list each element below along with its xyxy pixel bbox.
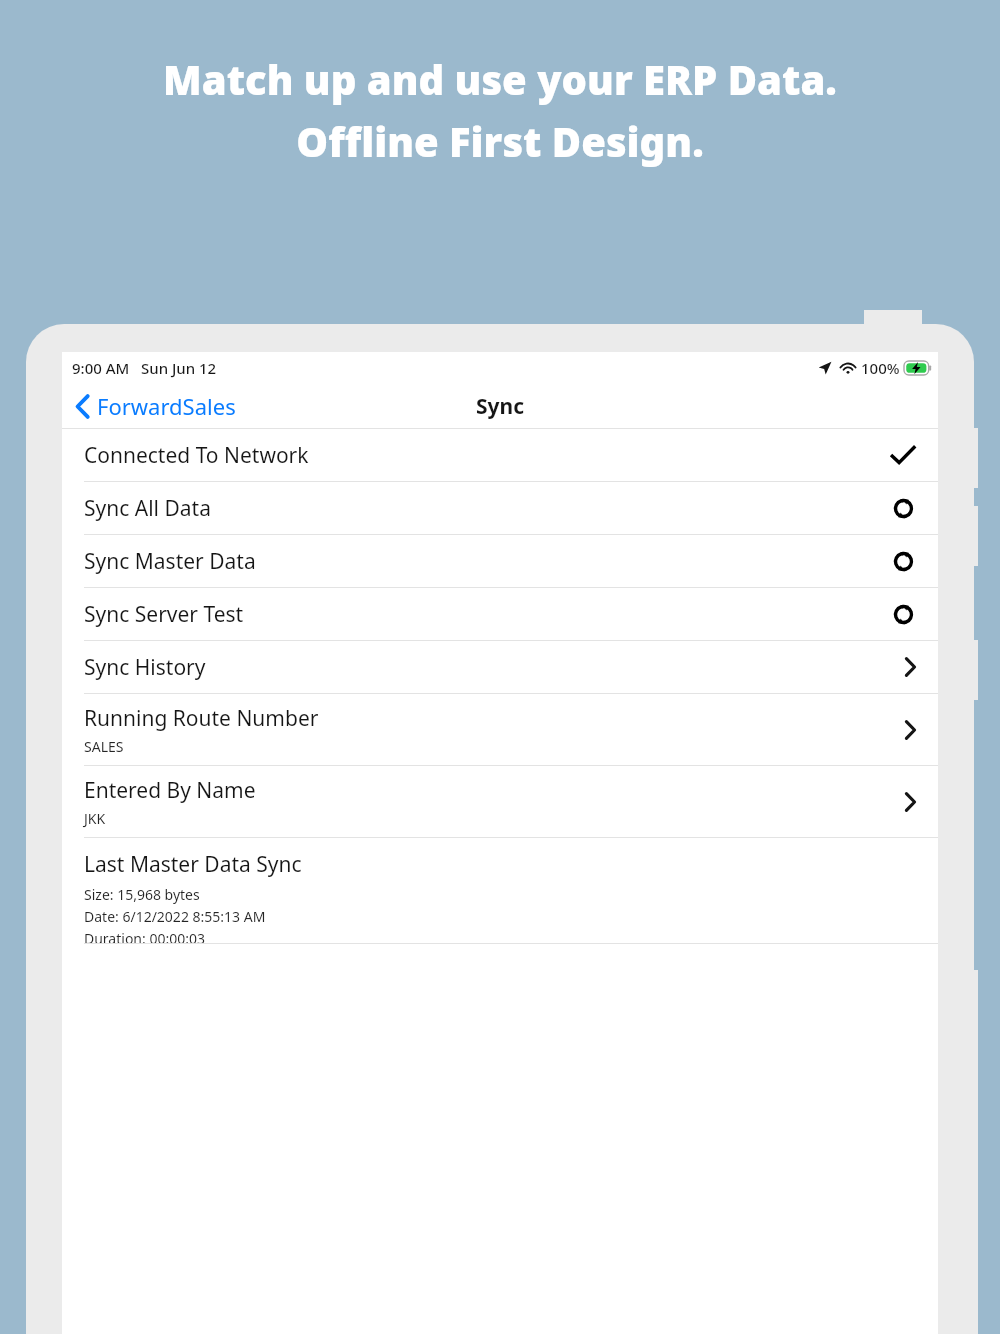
button[interactable]: ForwardSales [62,385,248,427]
other: Connected [890,445,916,465]
staticText: SALES [84,737,124,756]
staticText: Size: 15,968 bytes [84,885,200,904]
button[interactable]: Sync All Data [62,482,938,534]
staticText: Sync Server Test [84,600,891,629]
staticText: ForwardSales [97,391,236,421]
staticText: 9:00 AM [72,358,130,378]
other: Sync [891,549,916,574]
button[interactable]: Sync History [62,641,938,693]
other: Sync [891,496,916,521]
staticText: Sync History [84,653,904,682]
button[interactable]: Running Route Number [62,694,938,765]
staticText: JKK [84,809,106,828]
button[interactable]: Sync Server Test [62,588,938,640]
staticText: Offline First Design. [296,114,704,168]
staticText: 100% [861,358,900,378]
button[interactable]: Sync Master Data [62,535,938,587]
staticText: Connected To Network [84,441,890,470]
other: Sync [891,602,916,627]
button[interactable]: Last Master Data Sync [62,838,938,943]
staticText: Entered By Name [84,776,256,805]
button[interactable]: Entered By Name [62,766,938,837]
staticText: Last Master Data Sync [84,850,302,879]
staticText: Date: 6/12/2022 8:55:13 AM [84,907,266,926]
other: Open [904,657,916,677]
other: Open [904,720,916,740]
button[interactable]: Connected To Network [62,429,938,481]
staticText: Sun Jun 12 [141,358,217,378]
other: Open [904,792,916,812]
staticText: Sync [476,392,525,421]
staticText: Duration: 00:00:03 [84,929,205,943]
staticText: Running Route Number [84,704,319,733]
staticText: Sync Master Data [84,547,891,576]
staticText: Sync All Data [84,494,891,523]
staticText: Match up and use your ERP Data. [163,52,837,106]
